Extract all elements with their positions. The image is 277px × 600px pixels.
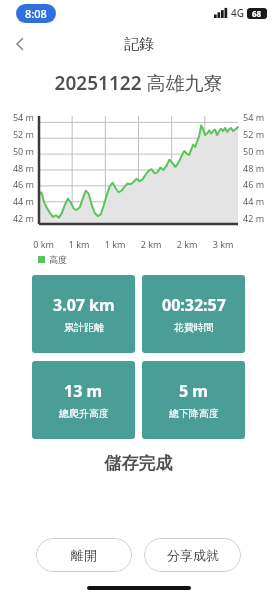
staticText: 54 m <box>0 111 34 123</box>
staticText: 儲存完成 <box>0 453 277 474</box>
staticText: 1 km <box>61 238 97 250</box>
staticText: 00:32:57 <box>162 294 226 316</box>
staticText: 48 m <box>0 162 34 174</box>
staticText: 1 km <box>97 238 133 250</box>
staticText: 54 m <box>243 111 265 123</box>
staticText: 3 km <box>205 238 241 250</box>
button[interactable]: 5 m <box>142 361 245 439</box>
button[interactable]: 離開 <box>36 538 132 572</box>
staticText: 離開 <box>71 547 97 563</box>
staticText: 4G <box>231 6 244 20</box>
button[interactable]: 00:32:57 <box>142 275 245 353</box>
staticText: 總爬升高度 <box>59 407 109 420</box>
staticText: 46 m <box>243 178 265 190</box>
staticText: 花費時間 <box>174 321 214 334</box>
staticText: 5 m <box>179 380 208 402</box>
staticText: 42 m <box>0 212 34 224</box>
button[interactable]: Back <box>0 26 40 62</box>
staticText: 記錄 <box>124 35 154 54</box>
button[interactable]: 3.07 km <box>32 275 135 353</box>
staticText: 2 km <box>169 238 205 250</box>
staticText: 46 m <box>0 178 34 190</box>
staticText: 分享成就 <box>167 547 219 563</box>
staticText: 3.07 km <box>53 294 115 316</box>
staticText: 8:08 <box>25 6 47 21</box>
staticText: 累計距離 <box>64 321 104 334</box>
staticText: 20251122 高雄九寮 <box>0 70 277 96</box>
staticText: 50 m <box>0 145 34 157</box>
staticText: 總下降高度 <box>169 407 219 420</box>
staticText: 44 m <box>0 195 34 207</box>
staticText: 52 m <box>0 128 34 140</box>
staticText: 44 m <box>243 195 265 207</box>
staticText: 50 m <box>243 145 265 157</box>
staticText: 52 m <box>243 128 265 140</box>
staticText: 高度 <box>49 254 67 265</box>
staticText: 68 <box>252 8 262 19</box>
staticText: 42 m <box>243 212 265 224</box>
button[interactable]: 13 m <box>32 361 135 439</box>
button[interactable]: 分享成就 <box>144 538 241 572</box>
staticText: 48 m <box>243 162 265 174</box>
staticText: 2 km <box>133 238 169 250</box>
staticText: 0 km <box>26 238 61 250</box>
staticText: 13 m <box>64 380 103 402</box>
